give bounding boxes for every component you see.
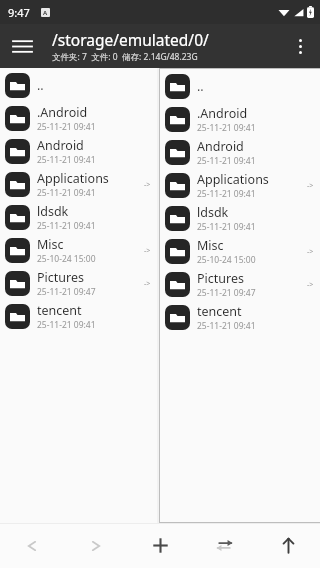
staticText: 25-11-21 09:47 bbox=[37, 286, 96, 298]
staticText: ldsdk bbox=[197, 204, 229, 221]
staticText: tencent bbox=[197, 303, 242, 320]
button[interactable]: .. bbox=[0, 68, 157, 102]
button[interactable]: Forward bbox=[64, 523, 128, 568]
button[interactable]: Pictures bbox=[160, 268, 320, 301]
button[interactable]: Misc bbox=[0, 234, 157, 267]
button[interactable]: Android bbox=[160, 136, 320, 169]
staticText: 9:47 bbox=[8, 5, 30, 20]
button[interactable]: More options bbox=[280, 26, 320, 66]
button[interactable]: ldsdk bbox=[0, 201, 157, 234]
button[interactable]: Swap panels bbox=[192, 523, 256, 568]
staticText: 25-11-21 09:41 bbox=[197, 221, 256, 233]
staticText: Applications bbox=[197, 171, 269, 188]
button[interactable]: Up bbox=[256, 523, 320, 568]
staticText: 文件夹: 7 文件: 0 储存: 2.14G/48.23G bbox=[52, 51, 198, 63]
staticText: A bbox=[43, 9, 48, 17]
button[interactable]: Back bbox=[0, 523, 64, 568]
staticText: 25-11-21 09:41 bbox=[37, 154, 96, 166]
staticText: Applications bbox=[37, 170, 109, 187]
staticText: -> bbox=[307, 280, 314, 290]
staticText: Pictures bbox=[37, 269, 84, 286]
button[interactable]: Pictures bbox=[0, 267, 157, 300]
button[interactable]: tencent bbox=[160, 301, 320, 334]
staticText: .Android bbox=[197, 105, 248, 122]
staticText: 25-11-21 09:41 bbox=[197, 155, 256, 167]
staticText: 25-11-21 09:41 bbox=[197, 122, 256, 134]
staticText: /storage/emulated/0/ bbox=[52, 29, 209, 50]
staticText: 25-10-24 15:00 bbox=[37, 253, 96, 265]
button[interactable]: Applications bbox=[160, 169, 320, 202]
button[interactable]: Misc bbox=[160, 235, 320, 268]
staticText: -> bbox=[307, 181, 314, 191]
staticText: .Android bbox=[37, 104, 88, 121]
staticText: .. bbox=[37, 77, 44, 94]
staticText: 25-11-21 09:41 bbox=[197, 188, 256, 200]
staticText: Misc bbox=[37, 236, 64, 253]
button[interactable]: Add bbox=[128, 523, 192, 568]
staticText: Misc bbox=[197, 237, 224, 254]
staticText: 25-11-21 09:41 bbox=[37, 319, 96, 331]
staticText: tencent bbox=[37, 302, 82, 319]
staticText: ldsdk bbox=[37, 203, 69, 220]
staticText: Android bbox=[37, 137, 84, 154]
button[interactable]: .. bbox=[160, 69, 320, 103]
staticText: 25-11-21 09:47 bbox=[197, 287, 256, 299]
button[interactable]: .Android bbox=[0, 102, 157, 135]
staticText: 25-10-24 15:00 bbox=[197, 254, 256, 266]
staticText: Pictures bbox=[197, 270, 244, 287]
staticText: -> bbox=[307, 247, 314, 257]
staticText: 25-11-21 09:41 bbox=[37, 187, 96, 199]
button[interactable]: ldsdk bbox=[160, 202, 320, 235]
staticText: 25-11-21 09:41 bbox=[37, 121, 96, 133]
button[interactable]: tencent bbox=[0, 300, 157, 333]
staticText: -> bbox=[144, 279, 151, 289]
button[interactable]: Android bbox=[0, 135, 157, 168]
staticText: .. bbox=[197, 78, 204, 95]
staticText: 25-11-21 09:41 bbox=[37, 220, 96, 232]
staticText: 25-11-21 09:41 bbox=[197, 320, 256, 332]
button[interactable]: Menu bbox=[0, 24, 44, 68]
staticText: -> bbox=[144, 180, 151, 190]
button[interactable]: .Android bbox=[160, 103, 320, 136]
staticText: -> bbox=[144, 246, 151, 256]
button[interactable]: Applications bbox=[0, 168, 157, 201]
staticText: Android bbox=[197, 138, 244, 155]
